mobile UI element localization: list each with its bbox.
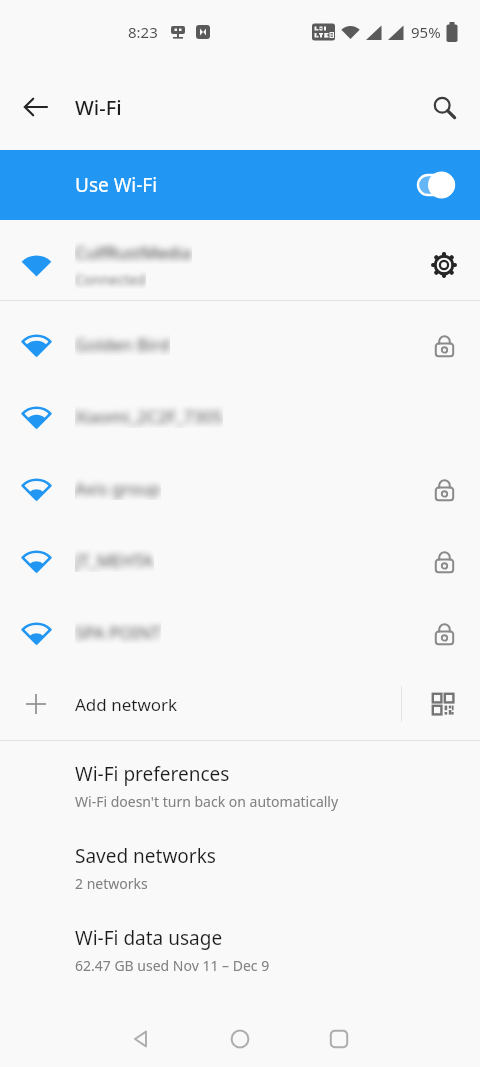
button[interactable]: Wi-Fi preferences [0,741,480,823]
staticText: 2 networks [75,874,148,893]
button[interactable] [121,1019,161,1059]
staticText: Saved networks [75,843,216,869]
button[interactable]: Axis group [0,452,480,524]
button[interactable]: JT_MEHTA [0,524,480,596]
staticText: CulfRustMedia [75,241,192,264]
button[interactable]: CulfRustMedia [0,230,480,300]
button[interactable] [220,1019,260,1059]
staticText: Connected [75,270,146,289]
button[interactable] [319,1019,359,1059]
staticText: Add network [75,693,401,716]
button[interactable]: Xiaomi_2C2F_7305 [0,380,480,452]
staticText: Use Wi-Fi [75,172,158,198]
staticText: Golden Bird [75,333,170,356]
button[interactable]: Add network [0,668,480,740]
button[interactable]: Wi-Fi data usage [0,905,480,987]
button[interactable]: Use Wi-Fi [0,150,480,220]
button[interactable] [18,89,54,125]
staticText: 8:23 [128,22,158,42]
staticText: Wi-Fi [75,94,122,121]
button[interactable]: Golden Bird [0,308,480,380]
staticText: JT_MEHTA [75,549,154,572]
staticText: 95% [411,22,441,42]
staticText: SPA POINT [75,621,161,644]
button[interactable] [430,691,456,717]
staticText: Xiaomi_2C2F_7305 [75,405,223,428]
button[interactable] [430,251,458,279]
staticText: Wi-Fi preferences [75,761,230,787]
button[interactable] [426,89,462,125]
button[interactable]: Saved networks [0,823,480,905]
button[interactable]: SPA POINT [0,596,480,668]
staticText: 62.47 GB used Nov 11 – Dec 9 [75,956,270,975]
staticText: Wi-Fi doesn't turn back on automatically [75,792,339,811]
staticText: Wi-Fi data usage [75,925,223,951]
staticText: Axis group [75,477,161,500]
